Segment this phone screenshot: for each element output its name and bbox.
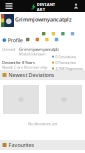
button[interactable]: Menu <box>0 0 18 12</box>
staticText: 0 Favourites <box>55 60 76 65</box>
staticText: 4,958 Pageviews <box>55 66 83 71</box>
button[interactable]: Profile <box>1 35 25 45</box>
button[interactable]: Badge <box>45 38 49 41</box>
staticText: ART <box>37 7 45 12</box>
button[interactable]: Favourites <box>0 140 85 150</box>
button[interactable]: Badge <box>61 32 65 35</box>
staticText: DEVIANT <box>37 2 55 7</box>
staticText: Needs Core Membership <box>2 64 47 70</box>
staticText: Favourites <box>8 141 34 149</box>
button[interactable]: Badge <box>42 32 45 35</box>
button[interactable]: Account <box>69 0 83 12</box>
button[interactable]: Badge <box>52 32 55 35</box>
staticText: 0 Deviations <box>55 54 76 59</box>
staticText: Deviant for 8 Years <box>2 60 35 65</box>
staticText: Grimmjowmyancatplz <box>15 16 72 23</box>
staticText: Grimmjowmyancatplz <box>19 46 59 52</box>
button[interactable]: Newest Deviations <box>0 70 85 80</box>
staticText: Profile <box>8 37 23 44</box>
button[interactable]: Badge <box>36 38 39 41</box>
staticText: Newest Deviations <box>8 71 54 79</box>
staticText: Male/Unknown <box>19 51 45 56</box>
staticText: Deviant <box>2 46 15 52</box>
staticText: No deviations yet <box>28 121 57 126</box>
